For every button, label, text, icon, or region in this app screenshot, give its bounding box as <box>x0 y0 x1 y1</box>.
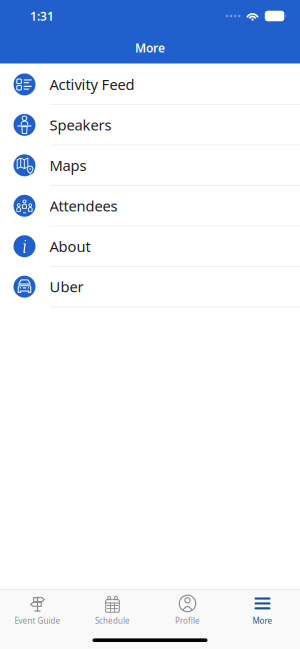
staticText: More <box>252 615 272 626</box>
staticText: Activity Feed <box>49 75 134 94</box>
staticText: Uber <box>49 277 83 296</box>
staticText: Schedule <box>95 615 130 626</box>
staticText: More <box>135 40 165 56</box>
button[interactable]: Event Guide <box>0 593 75 627</box>
staticText: About <box>49 236 90 256</box>
button[interactable]: Activity Feed <box>0 65 300 105</box>
staticText: Attendees <box>49 196 117 215</box>
button[interactable]: About <box>0 226 300 267</box>
button[interactable]: Speakers <box>0 105 300 146</box>
button[interactable]: More <box>225 593 300 627</box>
button[interactable]: Uber <box>0 267 300 307</box>
staticText: Maps <box>49 156 86 175</box>
staticText: 1:31 <box>30 8 54 24</box>
staticText: Profile <box>175 615 200 626</box>
button[interactable]: Maps <box>0 146 300 186</box>
button[interactable]: Schedule <box>75 593 150 627</box>
staticText: Speakers <box>49 115 111 135</box>
button[interactable]: Profile <box>150 593 225 627</box>
staticText: Event Guide <box>14 615 60 626</box>
button[interactable]: Attendees <box>0 186 300 227</box>
